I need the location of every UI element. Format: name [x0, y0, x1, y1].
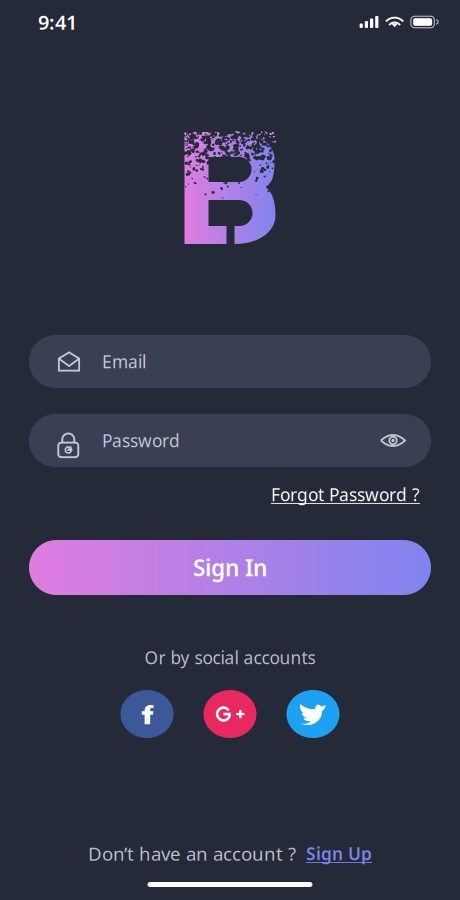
staticText: Forgot Password ?	[271, 483, 420, 506]
button[interactable]: Forgot Password ?	[271, 483, 420, 506]
staticText: Password	[102, 429, 180, 452]
button[interactable]: Sign in with Google	[203, 690, 256, 738]
button[interactable]: Sign In	[29, 540, 431, 595]
button[interactable]: Email	[29, 335, 431, 388]
staticText: Don’t have an account ?	[88, 841, 296, 866]
button[interactable]: Sign in with Twitter	[286, 690, 339, 738]
button[interactable]: Sign in with Facebook	[120, 690, 173, 738]
staticText: Sign Up	[306, 842, 372, 865]
staticText: Sign In	[193, 552, 267, 583]
staticText: Email	[102, 350, 146, 373]
staticText: Or by social accounts	[144, 646, 315, 669]
button[interactable]: Sign Up	[306, 842, 372, 865]
button[interactable]: Password	[29, 414, 431, 467]
staticText: 9:41	[38, 9, 77, 35]
